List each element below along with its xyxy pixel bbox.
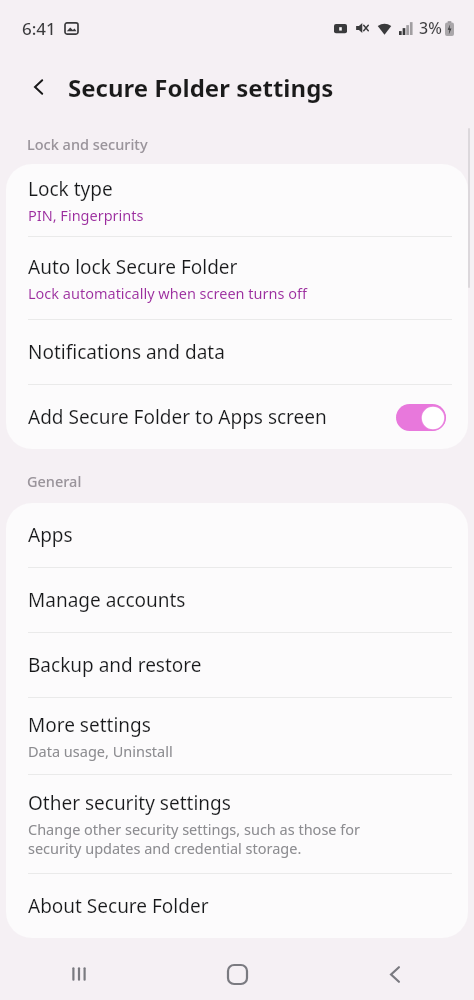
staticText: General — [27, 471, 82, 491]
button[interactable]: Backup and restore — [6, 633, 468, 697]
staticText: Change other security settings, such as … — [28, 819, 361, 858]
staticText: 3% — [419, 17, 442, 39]
staticText: Auto lock Secure Folder — [28, 254, 238, 280]
button[interactable]: Notifications and data — [6, 320, 468, 384]
staticText: Backup and restore — [28, 652, 202, 678]
button[interactable]: About Secure Folder — [6, 874, 468, 938]
button[interactable]: Home — [158, 948, 316, 1000]
staticText: 6:41 — [22, 17, 56, 40]
button[interactable]: Manage accounts — [6, 568, 468, 632]
staticText: Apps — [28, 522, 73, 548]
staticText: Lock and security — [27, 134, 148, 154]
button[interactable]: Add Secure Folder to Apps screen toggle,… — [396, 404, 446, 431]
staticText: Manage accounts — [28, 587, 186, 613]
staticText: Lock automatically when screen turns off — [28, 283, 307, 303]
button[interactable]: Auto lock Secure Folder — [6, 237, 468, 319]
staticText: About Secure Folder — [28, 893, 209, 919]
staticText: Other security settings — [28, 790, 231, 816]
staticText: PIN, Fingerprints — [28, 205, 144, 225]
staticText: Lock type — [28, 176, 113, 202]
button[interactable]: Other security settings — [6, 775, 468, 873]
button[interactable]: Navigate up — [22, 70, 56, 104]
button[interactable]: Recent apps — [0, 948, 158, 1000]
button[interactable]: More settings — [6, 698, 468, 774]
staticText: Secure Folder settings — [68, 71, 334, 104]
staticText: More settings — [28, 712, 151, 738]
staticText: Add Secure Folder to Apps screen — [28, 404, 396, 430]
button[interactable]: Apps — [6, 503, 468, 567]
button[interactable]: Back — [316, 948, 474, 1000]
staticText: Data usage, Uninstall — [28, 741, 173, 761]
button[interactable]: Add Secure Folder to Apps screen — [6, 385, 468, 449]
staticText: Notifications and data — [28, 339, 225, 365]
button[interactable]: Lock type — [6, 164, 468, 236]
